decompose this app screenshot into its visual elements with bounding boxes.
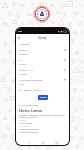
button[interactable]: Search	[38, 95, 48, 100]
button[interactable]: Back	[17, 36, 21, 40]
staticText: 3.5 Electric Current	[19, 88, 42, 91]
staticText: 1 A = 1 C / s	[19, 125, 29, 127]
staticText: Survey	[38, 36, 47, 40]
staticText: Search	[40, 96, 47, 99]
staticText: 3. Current Electricity	[19, 78, 43, 81]
button[interactable]: Language	[19, 43, 66, 53]
staticText: I = Q / t	[19, 119, 26, 121]
button[interactable]: Topic	[19, 83, 66, 93]
button[interactable]: Chapter	[19, 73, 66, 83]
staticText: Chapter	[19, 73, 28, 76]
staticText: 3. Current Electricity	[19, 104, 38, 107]
button[interactable]: Standard	[19, 53, 66, 63]
staticText: Measured by ammeter	[19, 128, 39, 130]
staticText: Physics / 10	[19, 68, 33, 71]
staticText: Topic	[19, 83, 25, 86]
staticText: English	[19, 48, 28, 51]
staticText: Language	[19, 43, 30, 46]
button[interactable]: Subject	[19, 63, 66, 73]
staticText: Electric Current	[19, 109, 43, 113]
staticText: 9:30	[18, 30, 22, 33]
staticText: 10	[19, 58, 22, 61]
button[interactable]: Home	[41, 141, 44, 144]
staticText: Conventional direction :	[19, 131, 40, 133]
staticText: Subject	[19, 63, 27, 66]
staticText: Standard	[19, 53, 29, 56]
staticText: The flow of free electric charge through…	[19, 114, 65, 116]
button[interactable]: Back	[27, 141, 30, 144]
staticText: SI unit : ampere	[19, 122, 33, 124]
staticText: called electric current.	[19, 116, 38, 118]
button[interactable]: Recent apps	[55, 141, 58, 144]
